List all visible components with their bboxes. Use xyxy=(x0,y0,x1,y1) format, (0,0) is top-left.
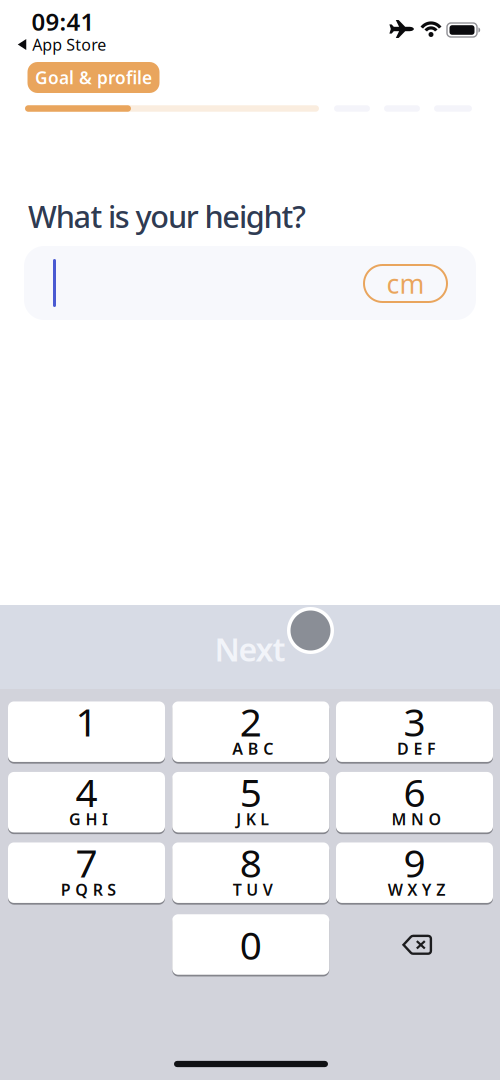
button[interactable]: 2 xyxy=(172,701,329,763)
button[interactable]: 5 xyxy=(172,771,329,833)
staticText: MNO xyxy=(391,808,441,830)
staticText: 3 xyxy=(403,696,425,747)
button[interactable]: cm xyxy=(364,265,447,302)
staticText: 2 xyxy=(240,696,262,747)
staticText: 9 xyxy=(403,837,425,888)
button[interactable]: 8 xyxy=(172,842,329,904)
staticText: 0 xyxy=(240,919,262,970)
button[interactable]: 6 xyxy=(336,771,493,833)
staticText: ABC xyxy=(232,738,273,759)
button[interactable]: Delete xyxy=(338,914,495,976)
button[interactable]: Next xyxy=(0,605,500,689)
staticText: TUV xyxy=(233,879,273,900)
staticText: What is your height? xyxy=(28,196,306,236)
button[interactable]: 9 xyxy=(336,842,493,904)
staticText: DEF xyxy=(397,738,436,759)
staticText: App Store xyxy=(32,34,106,55)
staticText: 4 xyxy=(75,766,97,818)
button[interactable]: 7 xyxy=(8,842,165,904)
button[interactable]: 3 xyxy=(336,701,493,763)
staticText: Goal & profile xyxy=(35,66,152,89)
staticText: PQRS xyxy=(61,879,116,900)
staticText: 6 xyxy=(403,766,425,818)
staticText: JKL xyxy=(236,808,269,830)
staticText: 8 xyxy=(240,837,262,888)
staticText: 09:41 xyxy=(31,6,94,37)
staticText: 5 xyxy=(240,766,262,818)
staticText: cm xyxy=(386,266,424,301)
staticText: 1 xyxy=(75,696,97,747)
button[interactable]: 1 xyxy=(8,701,165,763)
staticText: 7 xyxy=(75,837,97,888)
button[interactable]: 0 xyxy=(172,914,329,976)
button[interactable]: App Store xyxy=(18,34,106,55)
button[interactable]: 4 xyxy=(8,771,165,833)
staticText: GHI xyxy=(69,808,108,830)
staticText: Next xyxy=(214,628,285,670)
staticText: WXYZ xyxy=(388,879,445,900)
button[interactable]: Height xyxy=(24,246,476,320)
